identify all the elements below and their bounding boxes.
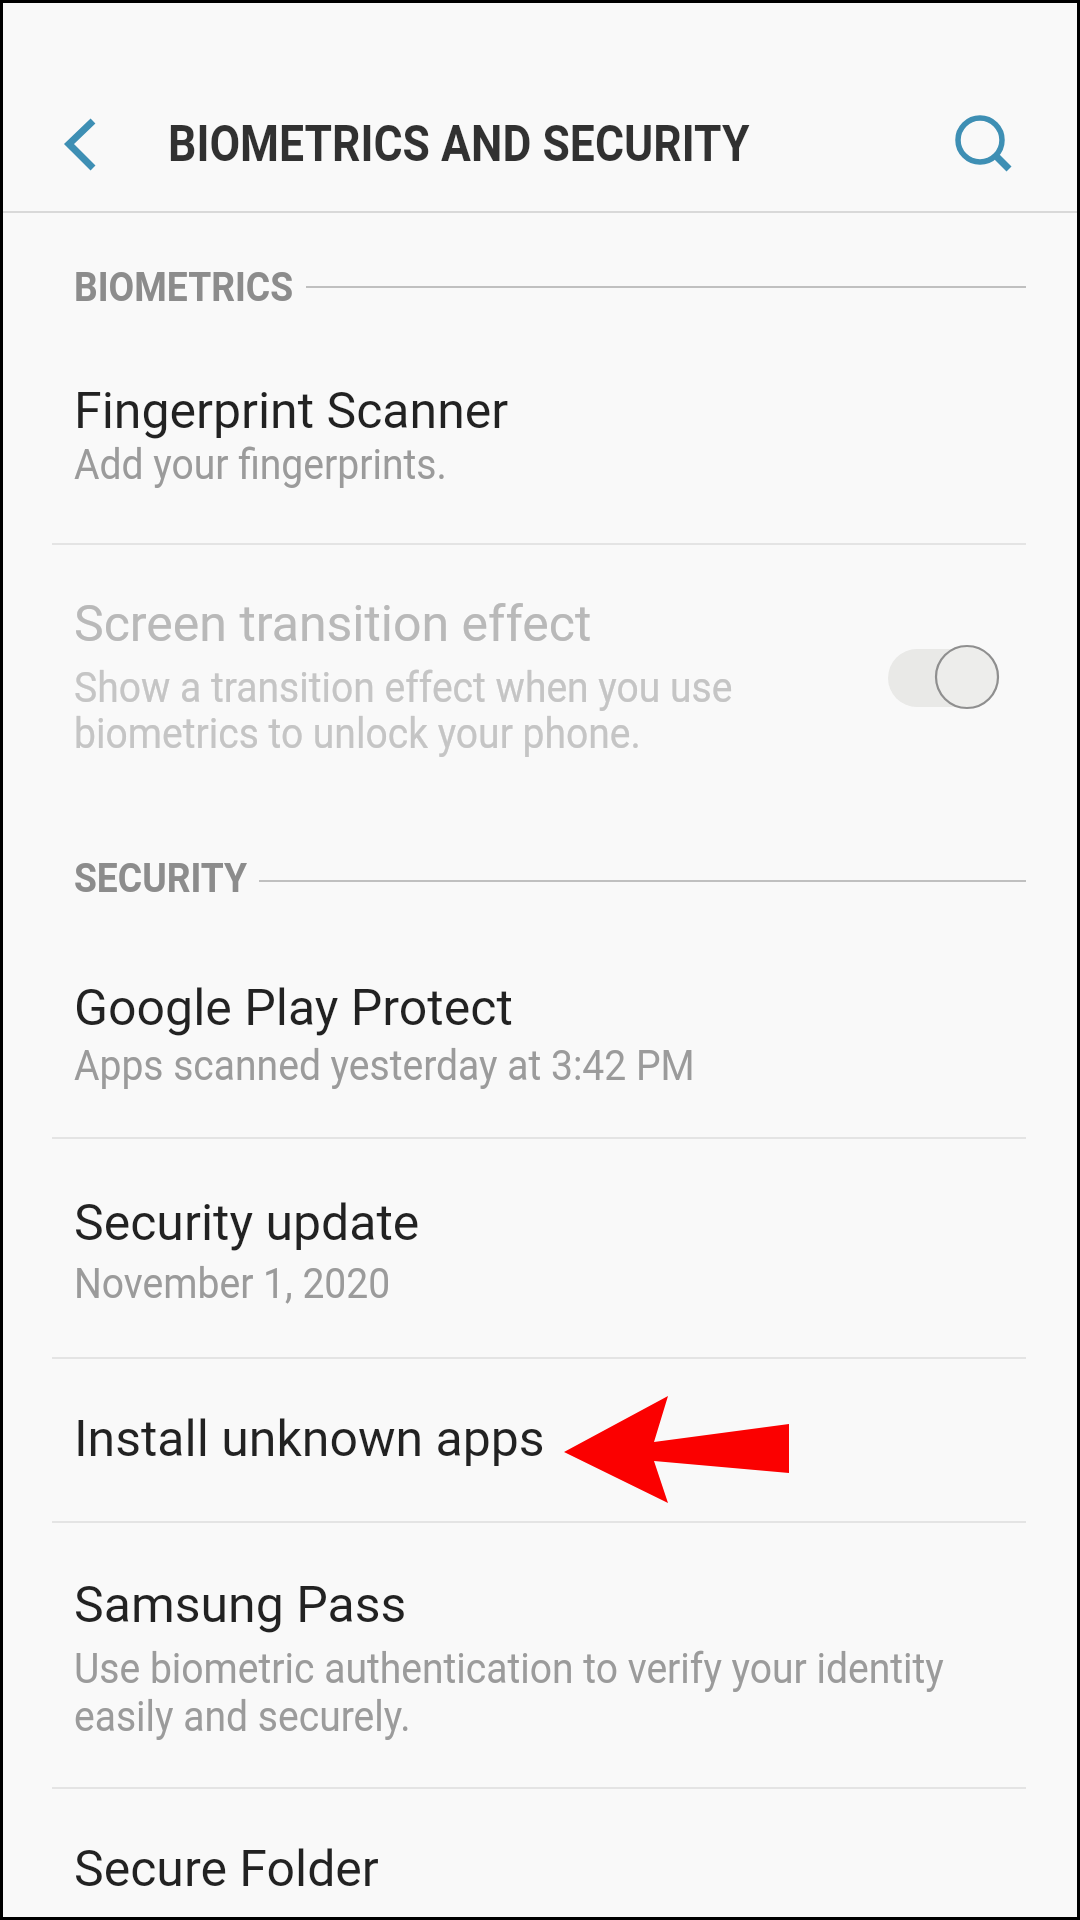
staticText: Use biometric authentication to verify y… — [74, 1644, 944, 1693]
staticText: Screen transition effect — [74, 595, 592, 654]
staticText: November 1, 2020 — [74, 1259, 390, 1308]
staticText: Add your fingerprints. — [74, 440, 447, 489]
staticText: BIOMETRICS — [74, 264, 293, 311]
staticText: Security update — [74, 1194, 420, 1253]
staticText: Fingerprint Scanner — [74, 382, 509, 441]
button[interactable] — [942, 102, 1022, 182]
staticText: Install unknown apps — [74, 1410, 545, 1469]
button[interactable] — [3, 545, 1077, 800]
button[interactable] — [44, 106, 120, 182]
button[interactable] — [3, 313, 1077, 543]
staticText: SECURITY — [74, 855, 248, 902]
staticText: Apps scanned yesterday at 3:42 PM — [74, 1041, 695, 1090]
staticText: easily and securely. — [74, 1692, 411, 1741]
staticText: Samsung Pass — [74, 1576, 407, 1635]
button[interactable] — [3, 1359, 1077, 1520]
button[interactable] — [3, 1789, 1077, 1911]
staticText: Google Play Protect — [74, 979, 513, 1038]
staticText: BIOMETRICS AND SECURITY — [168, 115, 750, 174]
button[interactable] — [3, 1523, 1077, 1786]
staticText: biometrics to unlock your phone. — [74, 709, 641, 758]
staticText: Show a transition effect when you use — [74, 663, 733, 712]
button[interactable] — [3, 1139, 1077, 1356]
staticText: Secure Folder — [74, 1840, 379, 1899]
button[interactable] — [3, 905, 1077, 1136]
